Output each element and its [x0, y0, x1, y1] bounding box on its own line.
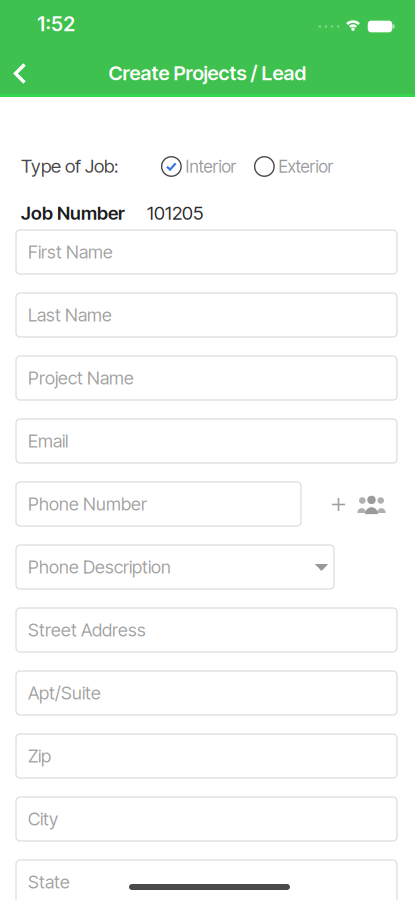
button[interactable]: Apt/Suite [16, 671, 397, 715]
button[interactable]: Last Name [16, 293, 397, 337]
button[interactable]: Phone Description [16, 545, 334, 589]
staticText: Zip [28, 745, 51, 767]
staticText: 1:52 [37, 12, 75, 36]
staticText: Apt/Suite [28, 682, 101, 704]
button[interactable]: State [16, 860, 397, 900]
button[interactable]: Interior [162, 156, 236, 177]
button[interactable]: Add phone number [332, 498, 345, 511]
button[interactable]: Phone Number [16, 482, 301, 526]
button[interactable]: Street Address [16, 608, 397, 652]
staticText: Email [28, 430, 68, 452]
staticText: Phone Number [28, 493, 147, 515]
staticText: First Name [28, 241, 113, 263]
staticText: Project Name [28, 367, 134, 389]
button[interactable]: Back [13, 63, 26, 84]
staticText: Type of Job: [21, 155, 118, 177]
staticText: Interior [185, 156, 236, 177]
button[interactable]: City [16, 797, 397, 841]
staticText: Phone Description [28, 556, 171, 578]
staticText: City [28, 808, 58, 830]
staticText: Exterior [278, 156, 333, 177]
button[interactable]: Email [16, 419, 397, 463]
button[interactable]: Project Name [16, 356, 397, 400]
staticText: Last Name [28, 304, 112, 326]
staticText: 101205 [147, 202, 203, 224]
button[interactable]: Choose from contacts [357, 493, 385, 515]
staticText: Create Projects / Lead [108, 61, 306, 85]
staticText: State [28, 871, 70, 893]
staticText: Street Address [28, 619, 146, 641]
button[interactable]: Zip [16, 734, 397, 778]
button[interactable]: First Name [16, 230, 397, 274]
button[interactable]: Exterior [255, 156, 333, 177]
staticText: Job Number [21, 202, 125, 224]
